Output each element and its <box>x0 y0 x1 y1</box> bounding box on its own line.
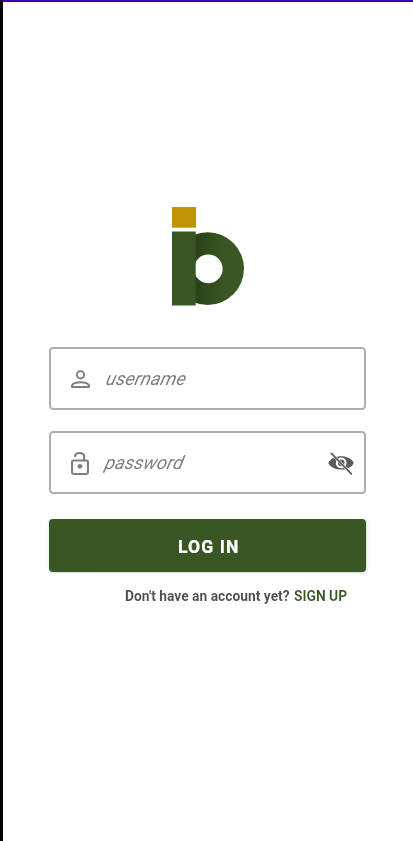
button[interactable]: username <box>49 347 366 410</box>
staticText: SIGN UP <box>294 588 348 604</box>
button[interactable]: Show password <box>323 445 359 481</box>
button[interactable]: password <box>49 431 366 494</box>
staticText: LOG IN <box>178 537 240 558</box>
staticText: username <box>105 368 185 390</box>
staticText: password <box>104 452 183 474</box>
staticText: Don't have an account yet? <box>125 588 294 604</box>
button[interactable]: LOG IN <box>49 519 366 572</box>
button[interactable]: SIGN UP <box>294 588 348 604</box>
